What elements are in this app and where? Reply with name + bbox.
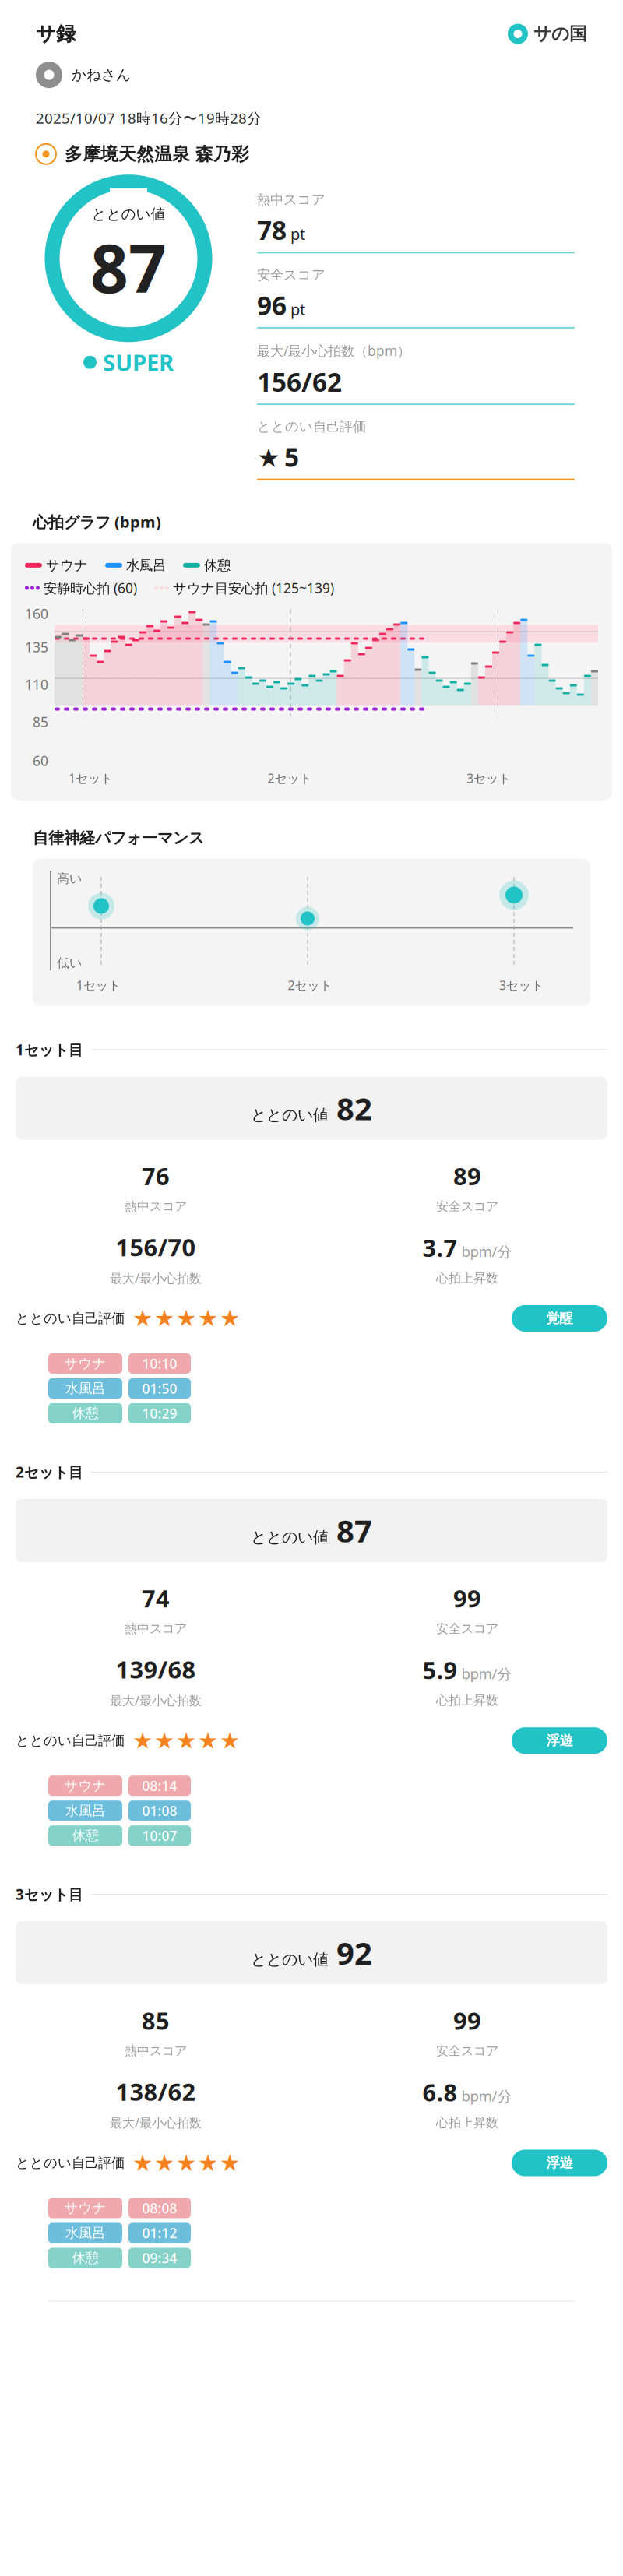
staticText: 安全スコア	[436, 2043, 498, 2059]
staticText: ★	[176, 2150, 196, 2176]
staticText: 139/68	[116, 1653, 196, 1685]
staticText: 安静時心拍 (60)	[44, 579, 137, 597]
staticText: 浮遊	[546, 2155, 573, 2171]
staticText: 78	[257, 213, 287, 247]
staticText: 10:29	[142, 1404, 177, 1422]
button[interactable]: 多摩境天然温泉 森乃彩	[0, 143, 623, 165]
staticText: 01:50	[142, 1379, 177, 1397]
button[interactable]: かねさん	[0, 62, 623, 88]
staticText: 多摩境天然温泉 森乃彩	[65, 143, 249, 165]
staticText: 76	[142, 1160, 170, 1192]
staticText: 休憩	[72, 1405, 99, 1422]
staticText: 熱中スコア	[125, 1621, 187, 1636]
staticText: 心拍上昇数	[436, 1270, 498, 1286]
button[interactable]: 浮遊	[512, 2150, 607, 2176]
staticText: 85	[33, 713, 48, 731]
staticText: ととのい自己評価	[257, 418, 366, 435]
staticText: ととのい自己評価	[16, 1732, 125, 1749]
staticText: 82	[336, 1087, 372, 1129]
staticText: サの国	[533, 23, 587, 45]
staticText: 心拍上昇数	[436, 1693, 498, 1708]
staticText: pt	[290, 224, 305, 244]
staticText: 3セット	[466, 770, 511, 786]
staticText: 60	[33, 752, 48, 770]
staticText: 水風呂	[65, 1380, 105, 1397]
staticText: 2セット	[268, 770, 312, 786]
staticText: サ録	[36, 22, 76, 46]
staticText: 最大/最小心拍数	[110, 1270, 202, 1286]
staticText: ★	[154, 2150, 174, 2176]
staticText: 160	[25, 605, 48, 623]
staticText: 低い	[57, 955, 82, 971]
staticText: サウナ	[64, 2200, 106, 2216]
staticText: 水風呂	[65, 2225, 105, 2241]
staticText: 休憩	[72, 2250, 99, 2266]
staticText: ★	[198, 1305, 218, 1331]
button[interactable]: 覚醒	[512, 1305, 607, 1332]
staticText: 自律神経パフォーマンス	[33, 828, 204, 848]
staticText: 最大/最小心拍数	[110, 2114, 202, 2131]
staticText: 1セット目	[16, 1040, 83, 1059]
staticText: 心拍グラフ (bpm)	[33, 511, 161, 532]
staticText: 3セット目	[16, 1885, 83, 1904]
staticText: 安全スコア	[436, 1199, 498, 1214]
staticText: 74	[142, 1582, 170, 1614]
staticText: 最大/最小心拍数（bpm）	[257, 342, 410, 360]
button[interactable]: サの国	[508, 23, 587, 45]
staticText: 最大/最小心拍数	[110, 1692, 202, 1709]
staticText: ととのい値	[251, 1105, 329, 1125]
button[interactable]: 浮遊	[512, 1727, 607, 1754]
staticText: 87	[336, 1510, 372, 1551]
staticText: 2025/10/07 18時16分〜19時28分	[36, 108, 262, 128]
staticText: 89	[453, 1160, 481, 1192]
staticText: ととのい値	[251, 1528, 329, 1547]
staticText: 85	[142, 2004, 170, 2036]
staticText: 浮遊	[546, 1732, 573, 1749]
staticText: 99	[453, 2004, 481, 2036]
staticText: 3.7	[422, 1232, 458, 1263]
staticText: サウナ	[64, 1355, 106, 1372]
staticText: ととのい値	[251, 1950, 329, 1969]
staticText: 水風呂	[65, 1802, 105, 1819]
staticText: ★	[198, 1728, 218, 1754]
staticText: 09:34	[142, 2249, 177, 2267]
staticText: ★	[154, 1305, 174, 1331]
staticText: 休憩	[204, 557, 231, 574]
staticText: 休憩	[72, 1827, 99, 1844]
staticText: 水風呂	[126, 557, 166, 574]
staticText: bpm/分	[461, 1242, 512, 1261]
staticText: サウナ目安心拍 (125~139)	[173, 579, 334, 597]
staticText: 1セット	[76, 977, 121, 993]
staticText: ★	[176, 1728, 196, 1754]
staticText: 熱中スコア	[257, 191, 326, 208]
staticText: ★	[132, 1305, 153, 1331]
staticText: ととのい自己評価	[16, 2155, 125, 2171]
staticText: 熱中スコア	[125, 2043, 187, 2059]
staticText: 156/70	[116, 1231, 196, 1263]
staticText: 10:10	[142, 1355, 177, 1372]
staticText: 08:14	[142, 1777, 177, 1795]
staticText: 6.8	[422, 2076, 458, 2108]
staticText: 5	[284, 440, 299, 474]
staticText: ★	[257, 443, 280, 473]
staticText: ととのい値	[92, 205, 165, 223]
staticText: 156/62	[257, 364, 342, 399]
staticText: 92	[336, 1932, 372, 1973]
staticText: 08:08	[142, 2199, 177, 2217]
staticText: 2セット	[288, 977, 332, 993]
staticText: bpm/分	[461, 2086, 512, 2105]
staticText: 安全スコア	[436, 1621, 498, 1636]
staticText: サウナ	[46, 557, 88, 574]
staticText: 安全スコア	[257, 267, 326, 283]
staticText: 99	[453, 1582, 481, 1614]
staticText: ★	[220, 1728, 240, 1754]
staticText: bpm/分	[461, 1664, 512, 1683]
staticText: 熱中スコア	[125, 1199, 187, 1214]
staticText: 138/62	[116, 2076, 196, 2107]
staticText: 01:08	[142, 1802, 177, 1820]
staticText: 覚醒	[546, 1310, 573, 1327]
staticText: 10:07	[142, 1827, 177, 1845]
staticText: ★	[198, 2150, 218, 2176]
staticText: 01:12	[142, 2224, 177, 2242]
staticText: ★	[220, 1305, 240, 1331]
